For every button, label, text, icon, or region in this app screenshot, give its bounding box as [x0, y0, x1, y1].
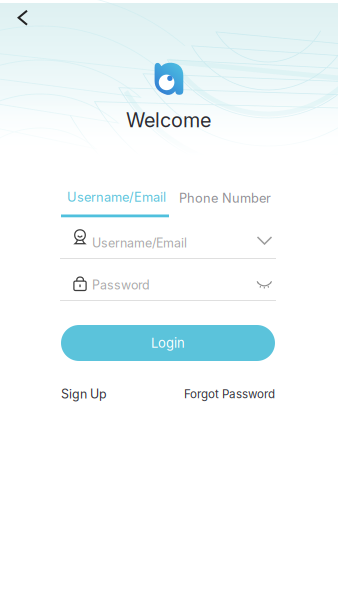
- button[interactable]: Phone Number: [179, 186, 271, 210]
- staticText: Welcome: [126, 108, 211, 132]
- button[interactable]: Sign Up: [61, 383, 107, 405]
- button[interactable]: Username/Email: [61, 185, 175, 219]
- staticText: Username/Email: [92, 235, 187, 251]
- button[interactable]: Username/Email: [60, 225, 276, 259]
- button[interactable]: Password: [60, 267, 276, 301]
- staticText: Login: [151, 335, 185, 351]
- staticText: Forgot Password: [184, 387, 275, 401]
- staticText: Password: [92, 277, 150, 293]
- button[interactable]: Forgot Password: [183, 383, 275, 405]
- staticText: Phone Number: [179, 190, 271, 206]
- staticText: Username/Email: [67, 189, 166, 205]
- button[interactable]: Login: [61, 325, 275, 361]
- button[interactable]: Back: [1, 0, 45, 38]
- staticText: Sign Up: [61, 386, 107, 401]
